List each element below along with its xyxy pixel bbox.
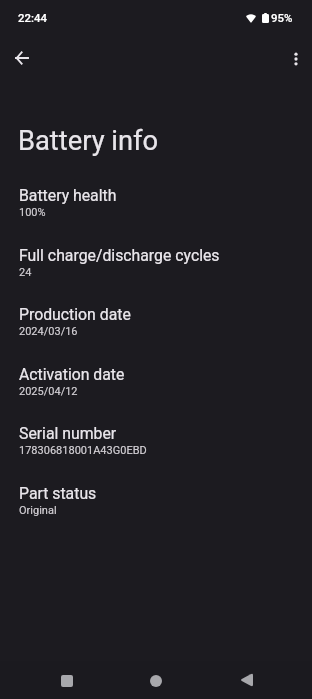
staticText: 2025/04/12 — [19, 385, 78, 398]
button[interactable]: Part status — [0, 484, 312, 543]
button[interactable]: Back — [1, 37, 42, 78]
button[interactable]: Serial number — [0, 424, 312, 483]
staticText: 24 — [19, 266, 32, 279]
button[interactable]: Recent apps — [47, 662, 87, 699]
staticText: Battery info — [18, 125, 159, 157]
button[interactable]: Home — [136, 662, 176, 699]
button[interactable]: Full charge/discharge cycles — [0, 246, 312, 305]
staticText: Production date — [19, 305, 131, 324]
staticText: 178306818001A43G0EBD — [19, 444, 147, 457]
staticText: 2024/03/16 — [19, 325, 78, 338]
staticText: Full charge/discharge cycles — [19, 246, 220, 265]
button[interactable]: Battery health — [0, 186, 312, 245]
staticText: 22:44 — [18, 11, 47, 24]
staticText: 95% — [271, 11, 293, 24]
staticText: Battery health — [19, 186, 117, 205]
button[interactable]: More options — [275, 38, 312, 79]
staticText: Activation date — [19, 365, 125, 384]
staticText: 100% — [19, 206, 46, 219]
button[interactable]: Back — [226, 661, 266, 699]
button[interactable]: Activation date — [0, 365, 312, 424]
staticText: Serial number — [19, 424, 117, 443]
button[interactable]: Production date — [0, 305, 312, 364]
staticText: Original — [19, 504, 57, 517]
staticText: Part status — [19, 484, 97, 503]
